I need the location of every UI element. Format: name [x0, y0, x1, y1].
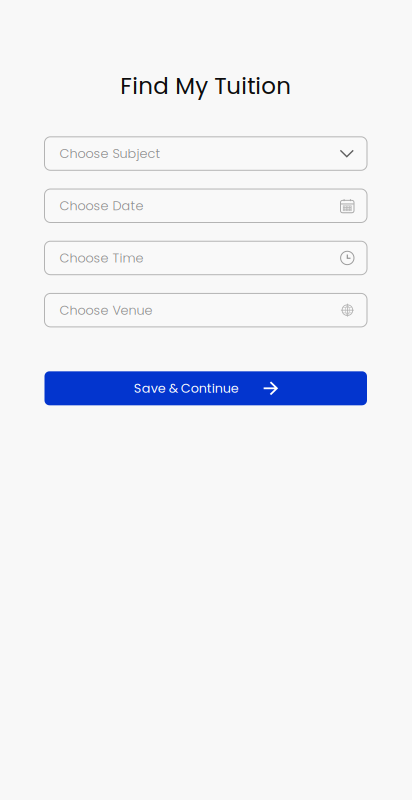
button[interactable]: Choose Date — [44, 189, 367, 222]
staticText: Find My Tuition — [120, 70, 291, 102]
staticText: Choose Time — [59, 249, 143, 267]
button[interactable]: Choose Time — [44, 241, 367, 275]
button[interactable]: Save & Continue — [44, 371, 367, 405]
staticText: Save & Continue — [134, 379, 239, 397]
staticText: Choose Subject — [59, 145, 160, 162]
staticText: Choose Venue — [59, 301, 152, 319]
button[interactable]: Choose Subject — [44, 137, 367, 170]
staticText: Choose Date — [59, 197, 143, 215]
button[interactable]: Choose Venue — [44, 293, 367, 327]
